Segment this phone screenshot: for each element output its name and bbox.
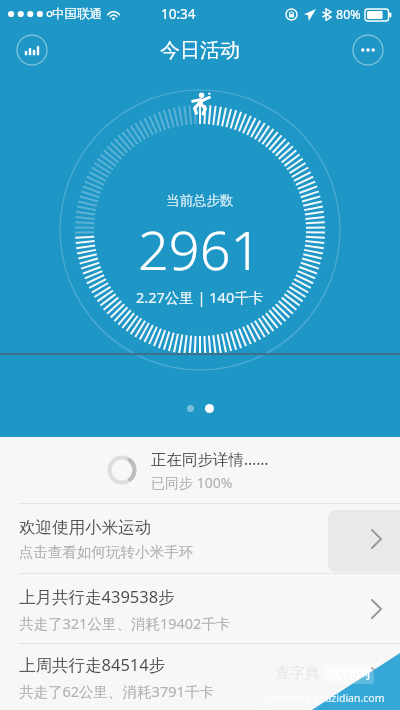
staticText: 上周共行走84514步 (19, 653, 166, 676)
button[interactable]: 正在同步详情…… (0, 437, 400, 503)
staticText: jiaocheng.chazidian.com (263, 691, 385, 705)
button[interactable]: Statistics (16, 34, 48, 66)
staticText: 80% (336, 6, 361, 23)
staticText: 已同步 100% (151, 473, 233, 492)
staticText: 共走了62公里、消耗3791千卡 (19, 681, 214, 701)
button[interactable]: More options (352, 34, 384, 66)
button[interactable]: 欢迎使用小米运动 (0, 504, 400, 573)
button[interactable]: 上周共行走84514步 (0, 644, 400, 710)
staticText: 教程网 (326, 664, 371, 683)
staticText: 点击查看如何玩转小米手环 (19, 543, 193, 561)
staticText: 2.27公里 | 140千卡 (136, 287, 264, 307)
staticText: 共走了321公里、消耗19402千卡 (19, 613, 231, 633)
staticText: 欢迎使用小米运动 (19, 517, 151, 538)
staticText: 中国联通 (52, 6, 102, 22)
button[interactable]: 上月共行走439538步 (0, 574, 400, 643)
staticText: 10:34 (161, 5, 196, 23)
staticText: 查字典 (275, 664, 320, 683)
staticText: 今日活动 (160, 38, 240, 63)
staticText: 上月共行走439538步 (19, 585, 175, 608)
staticText: 正在同步详情…… (151, 448, 269, 469)
staticText: 当前总步数 (166, 192, 234, 209)
staticText: 2961 (138, 212, 262, 286)
